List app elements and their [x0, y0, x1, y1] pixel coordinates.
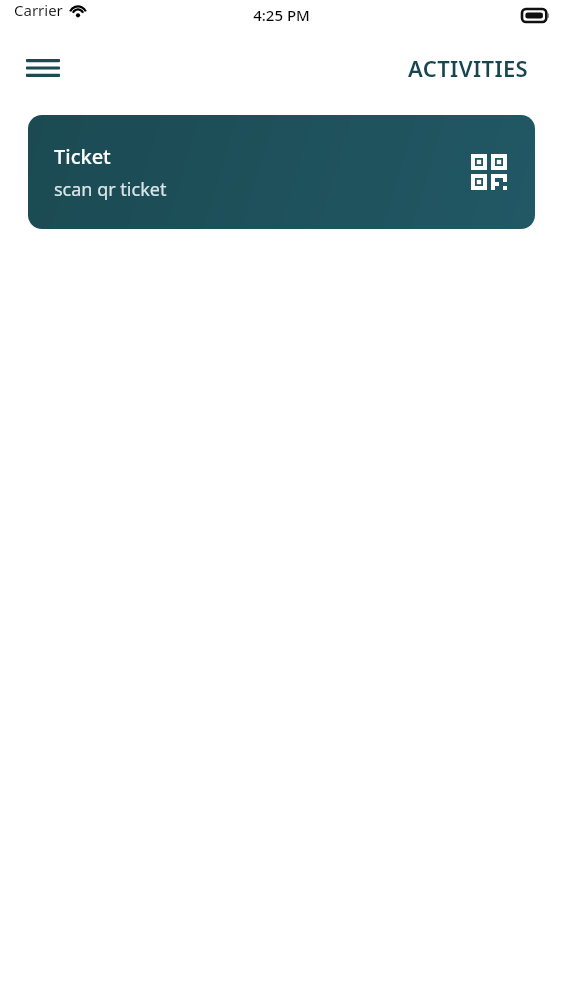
staticText: 4:25 PM [253, 5, 310, 25]
staticText: Carrier [14, 0, 63, 20]
staticText: Ticket [54, 143, 111, 170]
button[interactable]: Open navigation menu [21, 49, 65, 87]
staticText: scan qr ticket [54, 177, 167, 202]
button[interactable]: Ticket [28, 115, 535, 229]
staticText: ACTIVITIES [408, 53, 529, 83]
other: Scan QR ticket [469, 152, 509, 192]
